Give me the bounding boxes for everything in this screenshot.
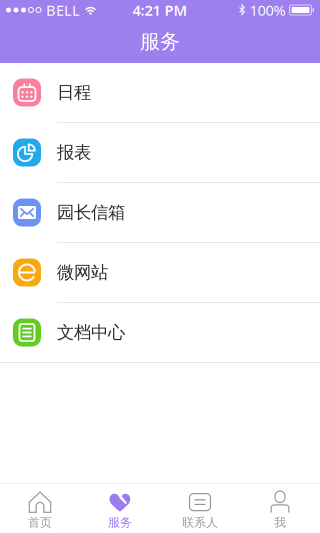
staticText: 服务 (140, 29, 180, 54)
staticText: 服务 (108, 515, 132, 530)
button[interactable]: 文档中心 (0, 303, 320, 363)
staticText: 报表 (57, 142, 91, 163)
staticText: 日程 (57, 82, 91, 103)
button[interactable]: 园长信箱 (0, 183, 320, 243)
button[interactable]: 服务 (80, 484, 160, 533)
button[interactable]: 我 (240, 484, 320, 533)
staticText: 我 (274, 515, 286, 530)
button[interactable]: 首页 (0, 484, 80, 533)
staticText: 4:21 PM (132, 0, 187, 20)
staticText: 联系人 (182, 515, 218, 530)
button[interactable]: 报表 (0, 123, 320, 183)
staticText: BELL (46, 0, 80, 20)
button[interactable]: 微网站 (0, 243, 320, 303)
staticText: 微网站 (57, 262, 108, 283)
staticText: 首页 (28, 515, 52, 530)
button[interactable]: 联系人 (160, 484, 240, 533)
staticText: 园长信箱 (57, 202, 125, 223)
staticText: 文档中心 (57, 322, 125, 343)
staticText: 100% (249, 0, 285, 20)
button[interactable]: 日程 (0, 63, 320, 123)
